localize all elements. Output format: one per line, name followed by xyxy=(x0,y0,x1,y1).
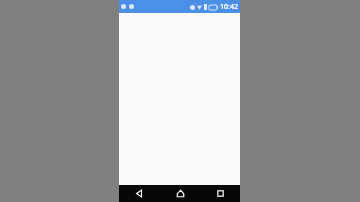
staticText: 10:42 xyxy=(220,2,238,12)
button[interactable]: Recents xyxy=(200,185,240,202)
button[interactable]: Back xyxy=(119,185,160,202)
button[interactable]: Home xyxy=(160,185,200,202)
